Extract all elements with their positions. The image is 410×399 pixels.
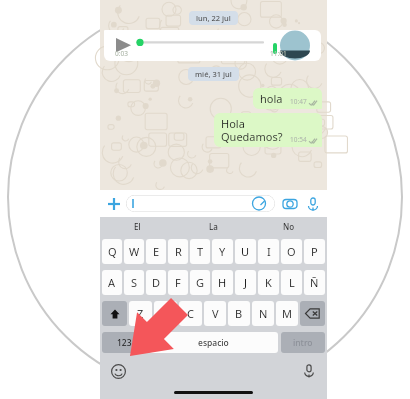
button[interactable]: R bbox=[168, 239, 188, 264]
staticText: R bbox=[175, 244, 182, 259]
button[interactable]: D bbox=[146, 270, 166, 295]
staticText: 10:47 bbox=[290, 97, 307, 106]
staticText: 123 bbox=[117, 337, 132, 349]
button[interactable]: Attach bbox=[105, 195, 123, 213]
staticText: N bbox=[259, 306, 268, 321]
button[interactable]: C bbox=[179, 301, 202, 326]
button[interactable]: espacio bbox=[149, 332, 278, 353]
button[interactable]: H bbox=[212, 270, 233, 295]
staticText: E bbox=[153, 244, 160, 259]
button[interactable]: Dictate bbox=[300, 362, 318, 380]
staticText: hola bbox=[260, 91, 283, 106]
staticText: T bbox=[197, 244, 204, 259]
button[interactable]: 0:03 bbox=[104, 30, 321, 61]
button[interactable]: G bbox=[190, 270, 210, 295]
staticText: 0:03 bbox=[115, 49, 128, 58]
button[interactable]: L bbox=[281, 270, 302, 295]
staticText: K bbox=[265, 275, 272, 290]
staticText: Y bbox=[219, 244, 226, 259]
button[interactable]: O bbox=[281, 239, 302, 264]
staticText: V bbox=[212, 306, 219, 321]
button[interactable]: T bbox=[190, 239, 210, 264]
staticText: S bbox=[131, 275, 138, 290]
button[interactable]: Hola Quedamos? bbox=[214, 113, 322, 147]
staticText: P bbox=[311, 244, 318, 259]
staticText: El bbox=[134, 221, 141, 232]
button[interactable]: Ñ bbox=[304, 270, 325, 295]
button[interactable]: P bbox=[304, 239, 325, 264]
button[interactable]: B bbox=[228, 301, 250, 326]
button[interactable]: Voice message bbox=[304, 195, 322, 213]
button[interactable]: Emoji bbox=[109, 362, 127, 380]
staticText: lun, 22 jul bbox=[196, 13, 231, 23]
button[interactable]: Z bbox=[129, 301, 152, 326]
staticText: H bbox=[218, 275, 227, 290]
button[interactable]: 123 bbox=[102, 332, 146, 353]
button[interactable]: N bbox=[252, 301, 274, 326]
staticText: D bbox=[152, 275, 161, 290]
button[interactable]: F bbox=[168, 270, 188, 295]
button[interactable]: Camera bbox=[281, 195, 299, 213]
staticText: espacio bbox=[198, 337, 229, 349]
button[interactable]: intro bbox=[281, 332, 325, 353]
staticText: O bbox=[287, 244, 296, 259]
button[interactable]: X bbox=[154, 301, 177, 326]
button[interactable]: La bbox=[175, 217, 251, 236]
staticText: J bbox=[244, 275, 248, 290]
staticText: La bbox=[209, 221, 218, 232]
button[interactable]: K bbox=[258, 270, 279, 295]
staticText: intro bbox=[293, 337, 313, 349]
staticText: I bbox=[267, 244, 271, 259]
staticText: C bbox=[187, 306, 194, 321]
button[interactable]: Q bbox=[102, 239, 122, 264]
staticText: Z bbox=[137, 306, 144, 321]
staticText: No bbox=[283, 221, 295, 232]
staticText: L bbox=[289, 275, 295, 290]
button[interactable]: shift bbox=[102, 301, 127, 326]
button[interactable]: W bbox=[124, 239, 144, 264]
button[interactable] bbox=[126, 195, 275, 212]
button[interactable]: I bbox=[258, 239, 279, 264]
staticText: 11:01 bbox=[270, 49, 287, 58]
staticText: F bbox=[175, 275, 181, 290]
staticText: Ñ bbox=[310, 275, 319, 290]
button[interactable]: U bbox=[235, 239, 256, 264]
staticText: U bbox=[241, 244, 250, 259]
staticText: A bbox=[108, 275, 116, 290]
button[interactable]: M bbox=[276, 301, 298, 326]
button[interactable]: A bbox=[102, 270, 122, 295]
button[interactable]: No bbox=[251, 217, 327, 236]
staticText: M bbox=[282, 306, 292, 321]
button[interactable]: Backspace bbox=[300, 301, 325, 326]
staticText: mié, 31 jul bbox=[195, 69, 232, 79]
staticText: W bbox=[129, 244, 140, 259]
staticText: G bbox=[196, 275, 205, 290]
staticText: Q bbox=[108, 244, 117, 259]
staticText: 10:54 bbox=[290, 135, 307, 144]
staticText: Hola Quedamos? bbox=[221, 116, 283, 144]
button[interactable]: El bbox=[100, 217, 175, 236]
button[interactable]: Y bbox=[212, 239, 233, 264]
button[interactable]: J bbox=[235, 270, 256, 295]
staticText: X bbox=[162, 306, 169, 321]
button[interactable]: hola bbox=[253, 88, 322, 109]
staticText: B bbox=[235, 306, 243, 321]
button[interactable]: S bbox=[124, 270, 144, 295]
button[interactable]: V bbox=[204, 301, 226, 326]
button[interactable]: E bbox=[146, 239, 166, 264]
